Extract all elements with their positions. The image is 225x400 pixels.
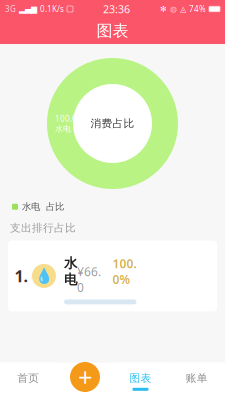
staticText: 100.0% bbox=[112, 255, 136, 287]
staticText: 首页 bbox=[17, 372, 39, 385]
staticText: 水电 占比 bbox=[22, 201, 64, 212]
staticText: 消费占比 bbox=[90, 117, 134, 130]
button[interactable]: Add bbox=[70, 360, 100, 394]
staticText: 水电 bbox=[55, 124, 71, 134]
button[interactable]: 首页 bbox=[0, 362, 56, 400]
staticText: 74% bbox=[189, 4, 206, 14]
staticText: 0.1K/s bbox=[40, 4, 64, 14]
staticText: 💧 bbox=[35, 268, 53, 284]
button[interactable]: 图表 bbox=[112, 362, 169, 400]
button[interactable]: 账单 bbox=[169, 362, 225, 400]
staticText: ¥66.0 bbox=[77, 248, 101, 295]
staticText: 支出排行占比 bbox=[10, 221, 76, 235]
staticText: ✻ bbox=[160, 4, 167, 14]
staticText: 水电 bbox=[64, 255, 77, 288]
staticText: ▂▄▆ bbox=[19, 4, 37, 14]
staticText: 1. bbox=[14, 265, 27, 286]
staticText: 23:36 bbox=[103, 2, 130, 16]
button[interactable]: 1. bbox=[8, 241, 217, 311]
staticText: 100.0 bbox=[55, 113, 77, 124]
staticText: 3G bbox=[5, 4, 16, 14]
staticText: ◍ bbox=[170, 4, 177, 14]
staticText: ◬ bbox=[180, 4, 186, 14]
staticText: 图表 bbox=[96, 21, 128, 41]
staticText: 图表 bbox=[129, 372, 151, 385]
staticText: 账单 bbox=[186, 372, 208, 385]
staticText: + bbox=[78, 360, 92, 394]
